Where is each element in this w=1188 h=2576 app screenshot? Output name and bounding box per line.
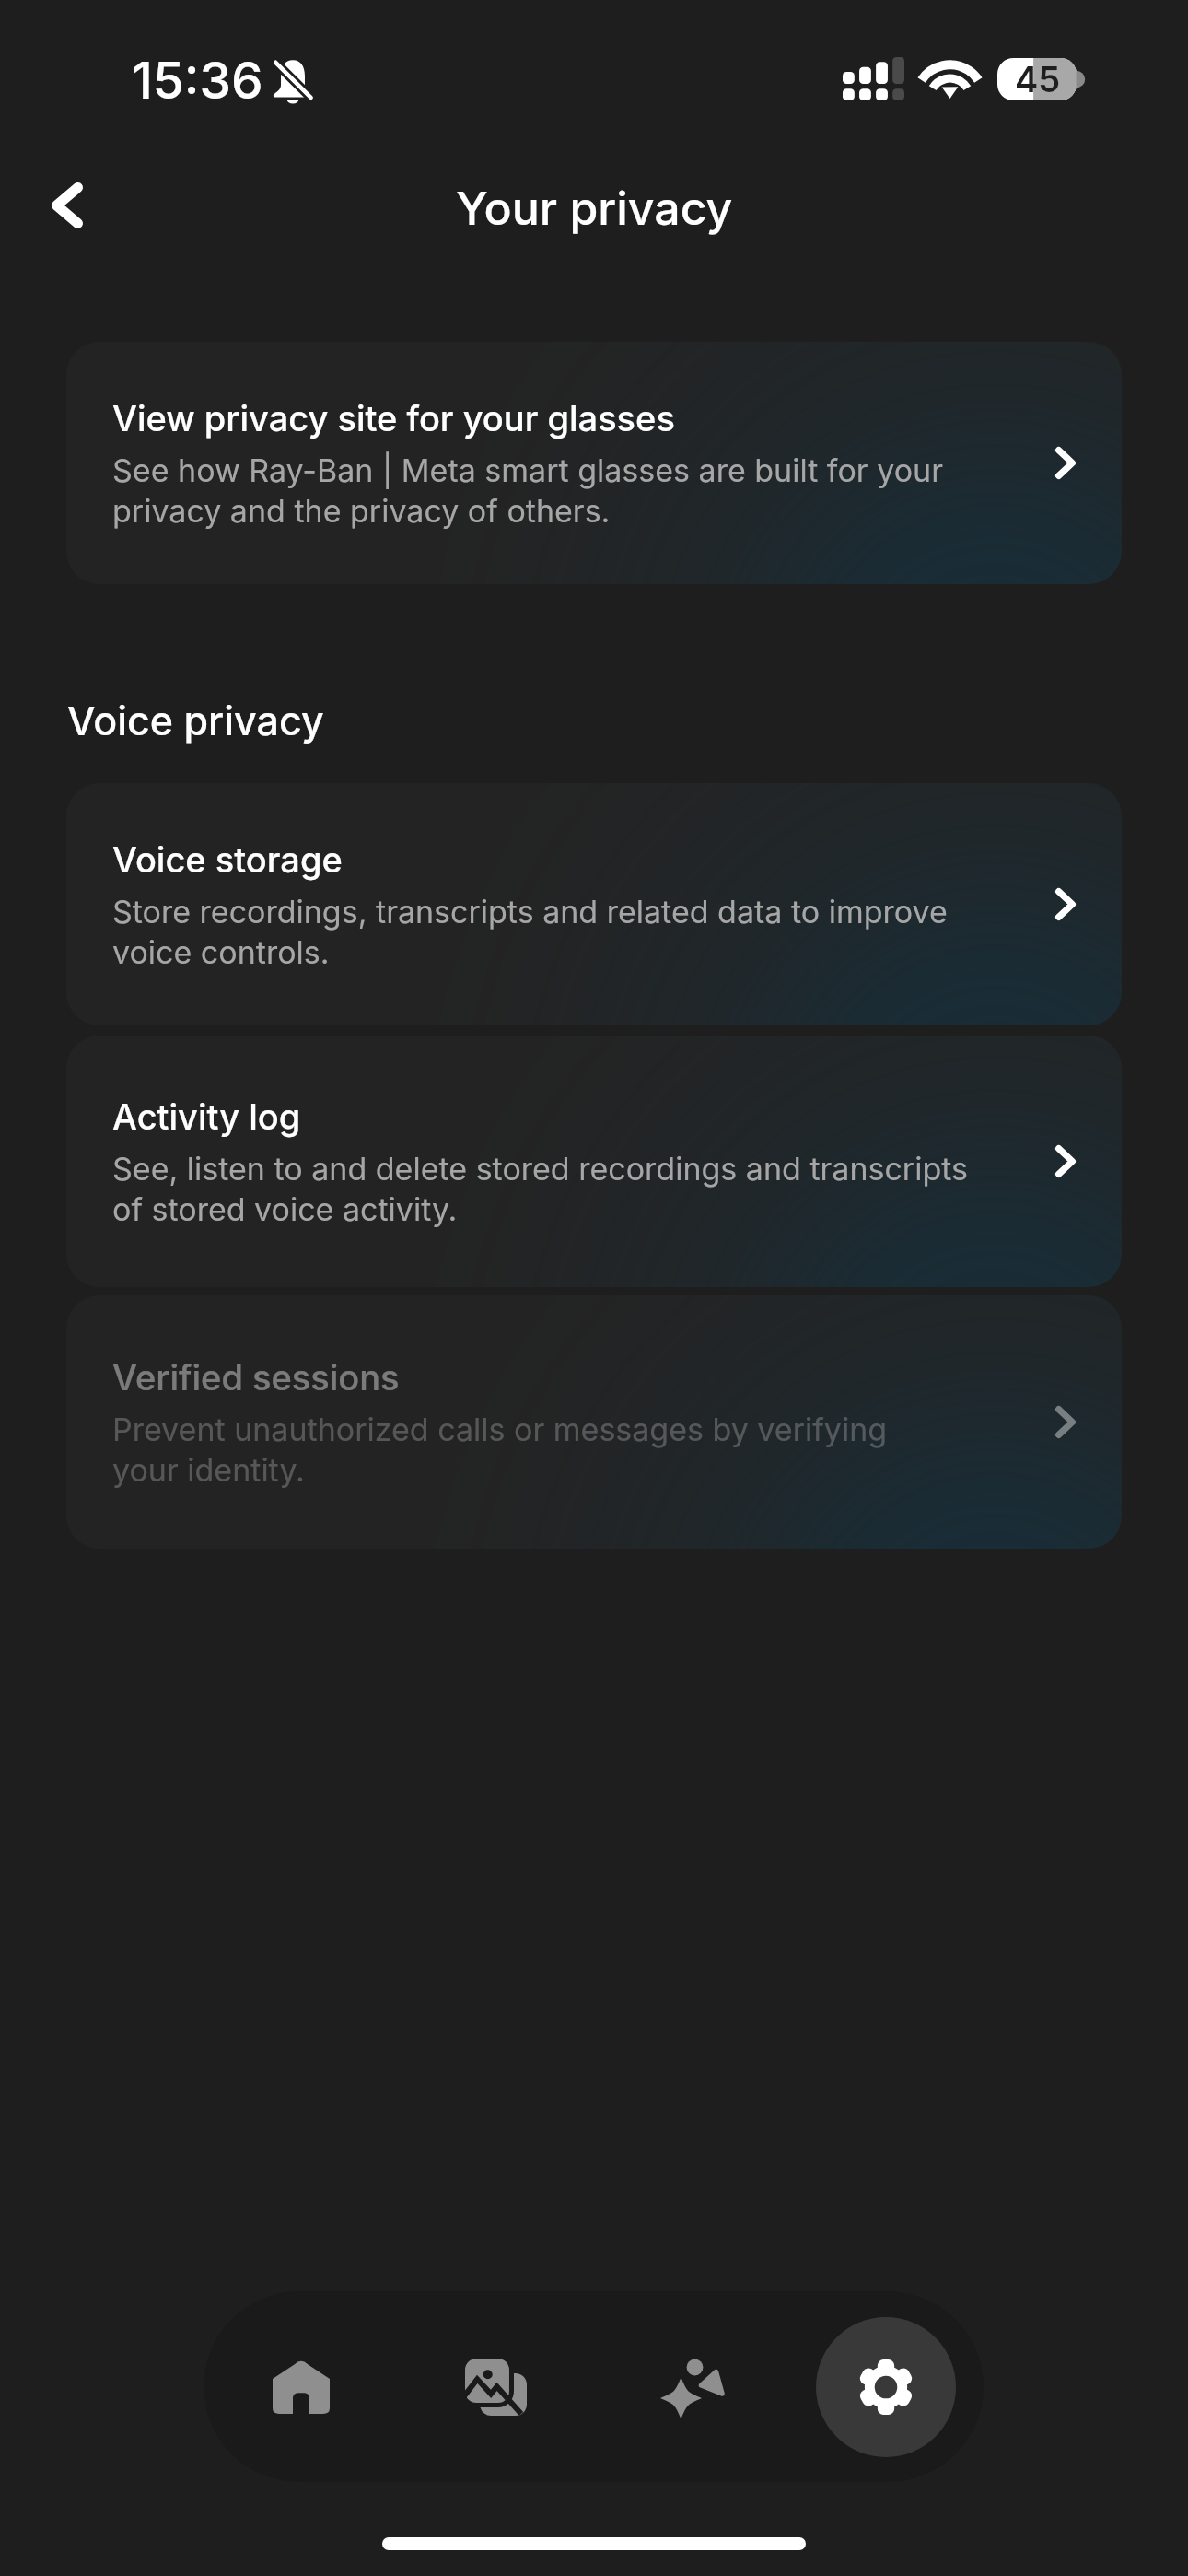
- button[interactable]: Verified sessions: [66, 1295, 1122, 1549]
- staticText: Activity log: [112, 1095, 301, 1139]
- staticText: See, listen to and delete stored recordi…: [112, 1148, 968, 1229]
- staticText: Voice storage: [112, 837, 343, 882]
- tab[interactable]: Home: [204, 2291, 398, 2482]
- tab[interactable]: Gallery: [398, 2291, 593, 2482]
- button[interactable]: Activity log: [66, 1036, 1122, 1287]
- staticText: Store recordings, transcripts and relate…: [112, 891, 948, 972]
- button[interactable]: Voice storage: [66, 783, 1122, 1025]
- button[interactable]: View privacy site for your glasses: [66, 342, 1122, 584]
- staticText: View privacy site for your glasses: [112, 396, 675, 440]
- staticText: 45: [1015, 61, 1061, 100]
- staticText: Verified sessions: [112, 1355, 400, 1399]
- staticText: 15:36: [132, 49, 263, 111]
- button[interactable]: Back: [17, 155, 118, 256]
- staticText: See how Ray-Ban | Meta smart glasses are…: [112, 450, 943, 531]
- tab[interactable]: Meta AI: [593, 2291, 788, 2482]
- staticText: Prevent unauthorized calls or messages b…: [112, 1409, 888, 1490]
- tab[interactable]: Settings: [788, 2291, 984, 2482]
- staticText: Your privacy: [456, 181, 733, 236]
- staticText: Voice privacy: [67, 696, 324, 745]
